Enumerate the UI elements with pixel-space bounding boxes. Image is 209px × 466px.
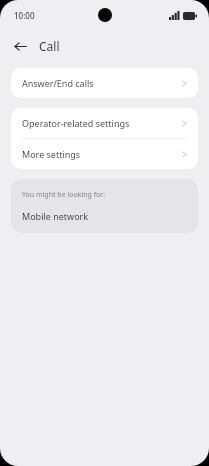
staticText: Operator-related settings: [22, 117, 182, 129]
staticText: You might be looking for:: [22, 190, 106, 200]
staticText: Answer/End calls: [22, 77, 182, 89]
button[interactable]: Operator-related settings: [11, 108, 198, 138]
button[interactable]: Back: [8, 34, 32, 58]
staticText: Call: [39, 38, 60, 54]
button[interactable]: Answer/End calls: [11, 68, 198, 98]
staticText: More settings: [22, 148, 182, 160]
staticText: Mobile network: [22, 210, 89, 222]
button[interactable]: You might be looking for:: [11, 179, 198, 233]
button[interactable]: More settings: [11, 139, 198, 169]
staticText: 10:00: [14, 10, 35, 21]
